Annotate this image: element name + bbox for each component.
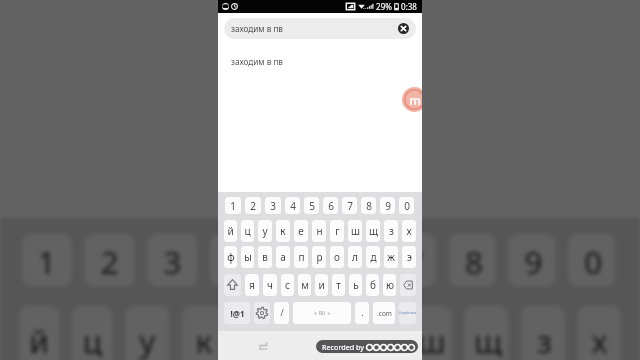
button[interactable]: 0	[568, 233, 615, 287]
button[interactable]: 1	[225, 197, 241, 214]
button[interactable]: 7	[389, 233, 436, 287]
button[interactable]: з	[521, 306, 565, 360]
button[interactable]: 2	[245, 197, 261, 214]
button[interactable]: ф	[224, 246, 237, 268]
button[interactable]: ц	[72, 306, 113, 360]
button[interactable]: 3	[265, 197, 281, 214]
button[interactable]: Recents	[258, 339, 272, 353]
button[interactable]: н	[312, 220, 326, 242]
staticText: заходим в пв	[231, 56, 283, 67]
button[interactable]: й	[224, 220, 237, 242]
button[interactable]: ы	[241, 246, 254, 268]
button[interactable]: а	[276, 246, 290, 268]
button[interactable]: т	[332, 274, 345, 296]
staticText: х	[590, 318, 609, 360]
button[interactable]: у	[125, 306, 169, 360]
button[interactable]: 2	[84, 233, 135, 287]
button[interactable]: ь	[349, 274, 362, 296]
staticText: m	[409, 92, 421, 108]
staticText: 1	[230, 199, 236, 213]
staticText: 0	[404, 199, 410, 213]
button[interactable]: .com	[373, 302, 395, 324]
button[interactable]: « RU »	[293, 302, 351, 324]
button[interactable]: .	[355, 302, 369, 324]
button[interactable]: 7	[342, 197, 357, 214]
button[interactable]: /	[274, 302, 289, 324]
staticText: 8	[366, 199, 372, 213]
staticText: 9	[385, 199, 391, 213]
staticText: ю	[386, 278, 394, 292]
staticText: т	[336, 278, 341, 292]
staticText: щ	[369, 224, 378, 238]
button[interactable]: э	[402, 246, 416, 268]
button[interactable]: с	[281, 274, 294, 296]
button[interactable]: ш	[348, 220, 362, 242]
button[interactable]: ч	[263, 274, 277, 296]
button[interactable]: 8	[449, 233, 496, 287]
staticText: 3	[270, 199, 276, 213]
button[interactable]: м	[298, 274, 311, 296]
button[interactable]: д	[366, 246, 380, 268]
staticText: 7	[347, 199, 353, 213]
button[interactable]: щ	[464, 306, 508, 360]
button[interactable]: щ	[366, 220, 380, 242]
button[interactable]: в	[258, 246, 272, 268]
button[interactable]: Backspace	[400, 274, 416, 296]
button[interactable]: 8	[361, 197, 376, 214]
staticText: 0	[584, 240, 603, 284]
staticText: м	[301, 278, 309, 292]
button[interactable]: л	[348, 246, 362, 268]
button[interactable]: Українська	[399, 302, 416, 324]
button[interactable]: ц	[241, 220, 254, 242]
button[interactable]: ж	[384, 246, 398, 268]
staticText: ж	[387, 250, 395, 264]
button[interactable]: е	[294, 220, 308, 242]
button[interactable]: 0	[399, 197, 414, 214]
button[interactable]: й	[19, 306, 59, 360]
button[interactable]: к	[276, 220, 290, 242]
staticText: ш	[351, 224, 360, 238]
button[interactable]: р	[312, 246, 326, 268]
staticText: 9	[524, 240, 543, 284]
button[interactable]: н	[295, 306, 339, 360]
button[interactable]: 4	[285, 197, 300, 214]
button[interactable]: Shift	[224, 274, 241, 296]
button[interactable]: п	[294, 246, 308, 268]
button[interactable]: я	[245, 274, 259, 296]
button[interactable]: и	[315, 274, 328, 296]
button[interactable]: 9	[508, 233, 555, 287]
button[interactable]: з	[384, 220, 398, 242]
staticText: 4	[226, 240, 245, 284]
button[interactable]: 6	[323, 197, 338, 214]
button[interactable]: заходим в пв	[224, 18, 416, 39]
button[interactable]: 6	[329, 233, 376, 287]
button[interactable]: Clear search	[398, 23, 409, 34]
button[interactable]: !@1	[224, 302, 250, 324]
button[interactable]: к	[182, 306, 226, 360]
button[interactable]: заходим в пв	[218, 44, 422, 78]
button[interactable]: ш	[408, 306, 452, 360]
button[interactable]: 9	[380, 197, 395, 214]
button[interactable]: х	[402, 220, 416, 242]
button[interactable]: 1	[22, 233, 72, 287]
staticText: п	[298, 250, 305, 264]
staticText: Українська	[399, 311, 416, 315]
button[interactable]: г	[351, 306, 395, 360]
button[interactable]: 4	[210, 233, 257, 287]
button[interactable]: ю	[383, 274, 396, 296]
button[interactable]: 3	[147, 233, 197, 287]
staticText: г	[367, 318, 383, 360]
button[interactable]: 5	[270, 233, 317, 287]
button[interactable]: г	[330, 220, 344, 242]
button[interactable]: х	[577, 306, 621, 360]
button[interactable]: б	[366, 274, 379, 296]
staticText: й	[28, 318, 50, 360]
button[interactable]: е	[238, 306, 282, 360]
button[interactable]: у	[258, 220, 272, 242]
staticText: д	[370, 250, 377, 264]
button[interactable]: Settings	[254, 302, 270, 324]
button[interactable]: о	[330, 246, 344, 268]
button[interactable]: 5	[304, 197, 319, 214]
staticText: с	[285, 278, 290, 292]
staticText: ц	[244, 224, 251, 238]
